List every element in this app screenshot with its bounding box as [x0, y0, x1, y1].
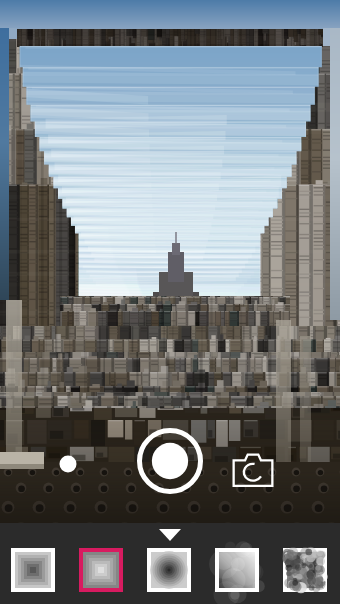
button[interactable]: Filter 4	[219, 552, 255, 588]
button[interactable]: Filter 5	[287, 552, 323, 588]
button[interactable]: Switch camera	[231, 448, 275, 492]
button[interactable]: Filter 3	[151, 552, 187, 588]
button[interactable]: Filter 2	[83, 552, 119, 588]
button[interactable]: Filter 1	[15, 552, 51, 588]
button[interactable]: Take photo	[137, 428, 203, 494]
